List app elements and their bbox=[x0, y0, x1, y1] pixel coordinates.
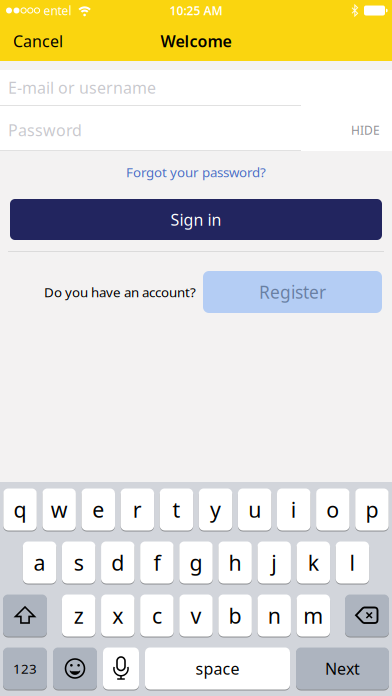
staticText: v bbox=[190, 601, 201, 630]
staticText: j bbox=[271, 548, 277, 577]
staticText: p bbox=[365, 495, 378, 524]
button[interactable]: Forgot your password? bbox=[126, 161, 266, 183]
staticText: n bbox=[268, 601, 281, 630]
button[interactable]: j bbox=[257, 541, 291, 584]
staticText: o bbox=[326, 495, 339, 524]
button[interactable]: E-mail or username bbox=[0, 70, 392, 105]
button[interactable]: Password bbox=[0, 106, 301, 150]
button[interactable]: r bbox=[121, 488, 154, 531]
staticText: Next bbox=[325, 658, 360, 679]
button[interactable]: t bbox=[160, 488, 193, 531]
staticText: q bbox=[14, 495, 27, 524]
button[interactable]: w bbox=[42, 488, 76, 531]
button[interactable]: s bbox=[62, 541, 95, 584]
staticText: c bbox=[152, 601, 162, 630]
staticText: g bbox=[189, 548, 202, 577]
staticText: Cancel bbox=[13, 30, 63, 52]
staticText: t bbox=[172, 495, 180, 524]
button[interactable]: Cancel bbox=[13, 30, 63, 52]
button[interactable]: Next bbox=[296, 647, 389, 690]
button[interactable]: g bbox=[179, 541, 213, 584]
button[interactable]: k bbox=[296, 541, 330, 584]
staticText: w bbox=[51, 495, 68, 524]
button[interactable]: f bbox=[140, 541, 174, 584]
button[interactable]: v bbox=[179, 594, 213, 637]
button[interactable]: c bbox=[140, 594, 174, 637]
staticText: Password bbox=[8, 119, 82, 141]
staticText: E-mail or username bbox=[8, 77, 156, 98]
staticText: space bbox=[195, 658, 239, 679]
staticText: h bbox=[229, 548, 242, 577]
button[interactable]: m bbox=[296, 594, 330, 637]
button[interactable]: l bbox=[336, 541, 369, 584]
staticText: Do you have an account? bbox=[44, 283, 196, 301]
button[interactable]: p bbox=[355, 488, 389, 531]
button[interactable]: b bbox=[218, 594, 252, 637]
staticText: a bbox=[34, 548, 46, 577]
staticText: b bbox=[229, 601, 242, 630]
button[interactable]: Shift bbox=[3, 594, 47, 637]
button[interactable]: Delete bbox=[345, 594, 389, 637]
staticText: Register bbox=[259, 280, 326, 303]
button[interactable]: i bbox=[277, 488, 310, 531]
button[interactable]: HIDE bbox=[351, 120, 380, 136]
staticText: s bbox=[74, 548, 84, 577]
staticText: i bbox=[291, 495, 297, 524]
staticText: z bbox=[74, 601, 84, 630]
staticText: 10:25 AM bbox=[169, 2, 222, 18]
staticText: Sign in bbox=[170, 209, 221, 230]
staticText: x bbox=[112, 601, 123, 630]
staticText: entel bbox=[44, 2, 72, 18]
staticText: k bbox=[308, 548, 319, 577]
button[interactable]: Emoji bbox=[53, 647, 97, 690]
button[interactable]: Dictate bbox=[103, 647, 139, 690]
button[interactable]: z bbox=[62, 594, 95, 637]
staticText: Welcome bbox=[160, 30, 231, 52]
staticText: Forgot your password? bbox=[126, 163, 266, 181]
button[interactable]: u bbox=[238, 488, 271, 531]
button[interactable]: Register bbox=[203, 271, 382, 313]
button[interactable]: h bbox=[218, 541, 252, 584]
button[interactable]: o bbox=[316, 488, 350, 531]
button[interactable]: space bbox=[145, 647, 290, 690]
button[interactable]: n bbox=[257, 594, 291, 637]
button[interactable]: d bbox=[101, 541, 134, 584]
staticText: u bbox=[248, 495, 261, 524]
staticText: l bbox=[349, 548, 355, 577]
button[interactable]: a bbox=[23, 541, 56, 584]
button[interactable]: q bbox=[3, 488, 37, 531]
staticText: y bbox=[210, 495, 221, 524]
button[interactable]: x bbox=[101, 594, 134, 637]
staticText: HIDE bbox=[351, 122, 380, 138]
staticText: f bbox=[153, 548, 160, 577]
staticText: 123 bbox=[13, 660, 37, 677]
button[interactable]: Sign in bbox=[10, 199, 382, 240]
staticText: m bbox=[303, 601, 323, 630]
button[interactable]: e bbox=[81, 488, 115, 531]
staticText: e bbox=[92, 495, 104, 524]
button[interactable]: y bbox=[199, 488, 232, 531]
button[interactable]: 123 bbox=[3, 647, 47, 690]
staticText: r bbox=[133, 495, 142, 524]
staticText: d bbox=[111, 548, 124, 577]
